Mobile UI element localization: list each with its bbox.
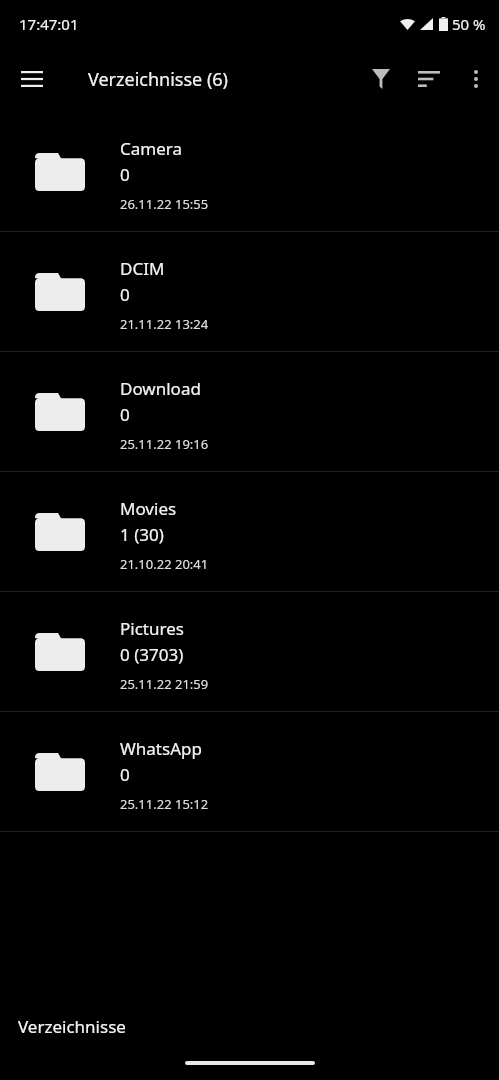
staticText: DCIM — [120, 257, 165, 280]
button[interactable]: Pictures — [0, 592, 499, 711]
staticText: Download — [120, 377, 201, 400]
staticText: 25.11.22 21:59 — [120, 675, 209, 693]
button[interactable]: WhatsApp — [0, 712, 499, 831]
staticText: 50 % — [452, 14, 486, 34]
staticText: 0 — [120, 763, 130, 786]
staticText: 21.10.22 20:41 — [120, 555, 209, 573]
staticText: Pictures — [120, 617, 184, 640]
button[interactable]: Camera — [0, 112, 499, 231]
button[interactable]: Download — [0, 352, 499, 471]
button[interactable]: Menu — [8, 55, 56, 103]
button[interactable]: Movies — [0, 472, 499, 591]
staticText: 1 (30) — [120, 523, 164, 546]
staticText: 0 — [120, 403, 130, 426]
staticText: Camera — [120, 137, 182, 160]
staticText: WhatsApp — [120, 737, 202, 760]
button[interactable]: Filter — [357, 55, 405, 103]
staticText: 0 (3703) — [120, 643, 184, 666]
button[interactable]: Sort — [405, 55, 453, 103]
button[interactable]: DCIM — [0, 232, 499, 351]
staticText: 21.11.22 13:24 — [120, 315, 209, 333]
staticText: 25.11.22 15:12 — [120, 795, 209, 813]
staticText: Verzeichnisse (6) — [88, 67, 228, 92]
staticText: 26.11.22 15:55 — [120, 195, 209, 213]
button[interactable]: More options — [453, 56, 499, 102]
staticText: 0 — [120, 163, 130, 186]
staticText: 17:47:01 — [19, 14, 79, 34]
staticText: 25.11.22 19:16 — [120, 435, 209, 453]
staticText: Movies — [120, 497, 177, 520]
staticText: 0 — [120, 283, 130, 306]
staticText: Verzeichnisse — [18, 1015, 126, 1038]
